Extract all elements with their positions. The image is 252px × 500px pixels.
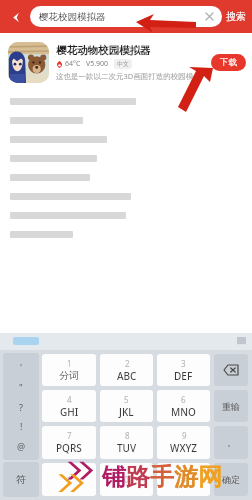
staticText: 符 [16, 473, 26, 486]
button[interactable]: 搜索 [226, 10, 246, 23]
staticText: PQRS [56, 441, 82, 455]
staticText: # [181, 474, 187, 485]
staticText: 3 [181, 358, 186, 369]
staticText: TUV [117, 441, 137, 455]
staticText: 樱花动物校园模拟器 [56, 44, 151, 57]
button[interactable]: Enter [214, 463, 248, 496]
staticText: 这也是一款以二次元3D画面打造的校园模 [56, 71, 194, 81]
staticText: ABC [117, 369, 137, 383]
staticText: 8 [125, 430, 130, 441]
button[interactable]: # [157, 463, 210, 496]
staticText: @ [17, 440, 26, 452]
staticText: 路 [126, 462, 150, 492]
button[interactable]: 5 [100, 390, 153, 422]
staticText: 铺 [102, 462, 126, 492]
staticText: JKL [119, 405, 134, 419]
button[interactable]: 樱花校园模拟器 [30, 6, 222, 27]
button[interactable]: Collapse keyboard [237, 337, 246, 346]
staticText: 4 [67, 394, 72, 405]
staticText: 下载 [220, 57, 237, 68]
staticText: GHI [60, 405, 79, 419]
staticText: 分词 [59, 369, 79, 382]
staticText: 9 [182, 430, 187, 441]
staticText: DEF [174, 369, 193, 383]
button[interactable]: 符 [3, 462, 39, 497]
staticText: 7 [67, 430, 72, 441]
staticText: WXYZ [170, 441, 198, 455]
button[interactable]: ' [3, 353, 39, 460]
button[interactable]: 4 [42, 390, 96, 422]
button[interactable]: Backspace [214, 354, 248, 386]
button[interactable] [13, 337, 39, 345]
staticText: 1 [67, 358, 72, 369]
staticText: 中文 [117, 60, 129, 68]
staticText: 64°C [65, 59, 81, 69]
button[interactable]: 下载 [211, 54, 246, 71]
button[interactable]: Clear [203, 10, 216, 23]
staticText: " [19, 381, 23, 393]
staticText: 樱花校园模拟器 [39, 11, 203, 23]
button[interactable]: 9 [157, 426, 210, 459]
staticText: 重输 [222, 401, 240, 412]
button[interactable]: 1 [42, 354, 96, 386]
staticText: ' [20, 361, 23, 373]
staticText: 手 [150, 462, 174, 492]
staticText: 2 [125, 358, 130, 369]
button[interactable]: 2 [100, 354, 153, 386]
button[interactable]: * [42, 463, 96, 496]
button[interactable]: 0 [100, 463, 153, 496]
button[interactable] [8, 42, 49, 83]
button[interactable]: 8 [100, 426, 153, 459]
button[interactable]: 6 [157, 390, 210, 422]
staticText: 游 [174, 462, 198, 492]
staticText: 搜索 [226, 10, 246, 23]
staticText: 。 [227, 437, 236, 448]
staticText: ? [19, 401, 23, 413]
staticText: ! [20, 420, 23, 432]
staticText: 确定 [222, 474, 240, 485]
button[interactable]: 重输 [214, 390, 248, 422]
button[interactable]: 3 [157, 354, 210, 386]
staticText: V5.900 [86, 59, 109, 69]
staticText: * [67, 474, 72, 485]
staticText: 6 [181, 394, 186, 405]
button[interactable]: 7 [42, 426, 96, 459]
staticText: 网 [198, 462, 222, 492]
staticText: MNO [171, 405, 196, 419]
button[interactable]: Back [5, 6, 27, 28]
staticText: 0 [124, 474, 129, 485]
staticText: 5 [124, 394, 129, 405]
